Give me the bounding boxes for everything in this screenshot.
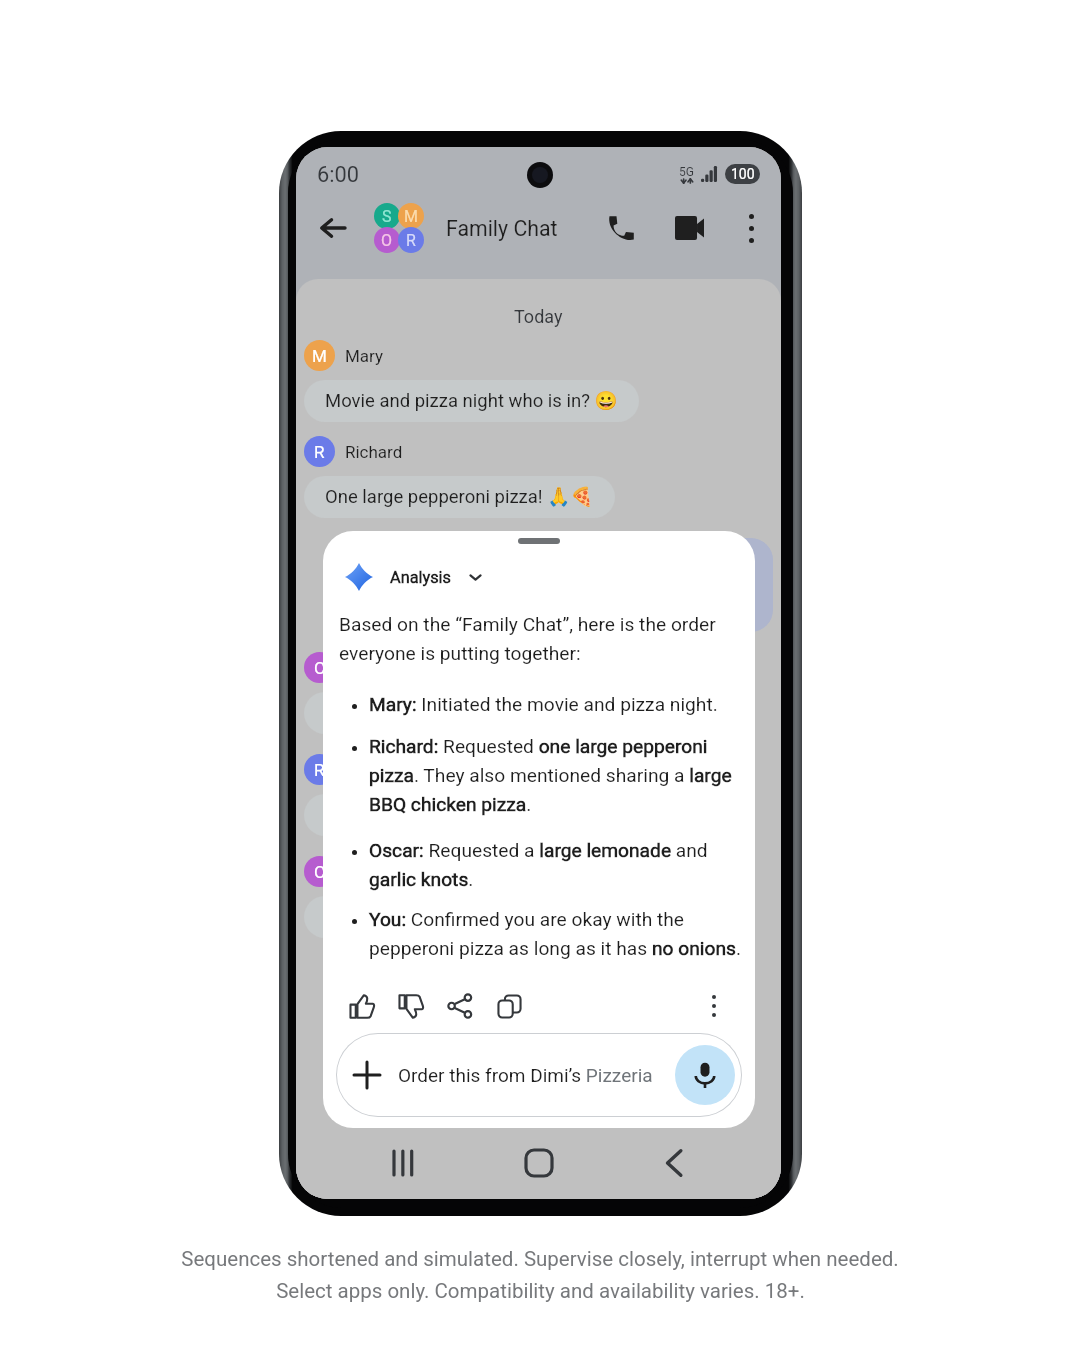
- staticText: Oscar: [345, 862, 390, 882]
- staticText: R: [314, 760, 325, 780]
- staticText: 5G: [679, 165, 694, 179]
- staticText: Also BBQ chicken pizza: [325, 804, 518, 826]
- staticText: M: [404, 207, 418, 226]
- staticText: O: [381, 231, 393, 250]
- staticText: Richard: [345, 442, 403, 462]
- staticText: Sequences shortened and simulated. Super…: [181, 1247, 899, 1271]
- button[interactable]: I'm in! Pepperoni works for me as long a…: [523, 538, 773, 632]
- button[interactable]: Share: [441, 987, 479, 1025]
- button[interactable]: One large pepperoni pizza! 🙏🍕: [304, 476, 615, 518]
- button[interactable]: Video call: [667, 206, 711, 250]
- button[interactable]: More options: [695, 987, 733, 1025]
- button[interactable]: Recent apps: [374, 1134, 432, 1192]
- button[interactable]: Dislike: [392, 987, 430, 1025]
- staticText: You: Confirmed you are okay with the pep…: [369, 908, 755, 959]
- staticText: R: [406, 231, 416, 250]
- staticText: R: [314, 442, 325, 462]
- staticText: I'm in! Pepperoni works for me as long a…: [544, 548, 752, 622]
- staticText: Analysis: [390, 568, 451, 587]
- button[interactable]: Also BBQ chicken pizza: [304, 794, 539, 836]
- button[interactable]: Analysis: [323, 557, 755, 597]
- staticText: Order this from Dimi’s Pizzeria: [398, 1064, 653, 1086]
- staticText: Movie and pizza night who is in? 😀: [325, 390, 618, 412]
- staticText: M: [312, 346, 327, 366]
- staticText: O: [314, 658, 326, 678]
- button[interactable]: Copy: [490, 987, 528, 1025]
- staticText: O: [314, 862, 326, 882]
- button[interactable]: Order this from Dimi’s Pizzeria: [336, 1033, 742, 1117]
- staticText: Based on the “Family Chat”, here is the …: [339, 613, 755, 664]
- button[interactable]: Back: [645, 1134, 703, 1192]
- button[interactable]: More options: [733, 210, 769, 246]
- button[interactable]: Call: [599, 206, 643, 250]
- staticText: Mary: Initiated the movie and pizza nigh…: [369, 693, 718, 716]
- staticText: Richard: Requested one large pepperoni p…: [369, 735, 755, 815]
- button[interactable]: Large lemonade please: [304, 692, 538, 734]
- button[interactable]: Voice input: [675, 1045, 735, 1105]
- button[interactable]: Back: [309, 204, 357, 252]
- staticText: One large pepperoni pizza! 🙏🍕: [325, 486, 594, 508]
- staticText: Family Chat: [446, 216, 558, 241]
- staticText: S: [382, 207, 392, 226]
- staticText: 6:00: [317, 162, 360, 188]
- staticText: Oscar: Requested a large lemonade and ga…: [369, 839, 755, 890]
- staticText: Select apps only. Compatibility and avai…: [276, 1279, 805, 1303]
- staticText: Mary: [345, 346, 384, 366]
- button[interactable]: Home: [510, 1134, 568, 1192]
- button[interactable]: Movie and pizza night who is in? 😀: [304, 380, 639, 422]
- staticText: And garlic knots please: [325, 906, 517, 928]
- staticText: Today: [514, 306, 563, 327]
- button[interactable]: And garlic knots please: [304, 896, 538, 938]
- staticText: 100: [731, 166, 755, 182]
- staticText: Richard: [345, 760, 403, 780]
- button[interactable]: Like: [343, 987, 381, 1025]
- staticText: Large lemonade please: [325, 702, 517, 724]
- staticText: Oscar: [345, 658, 390, 678]
